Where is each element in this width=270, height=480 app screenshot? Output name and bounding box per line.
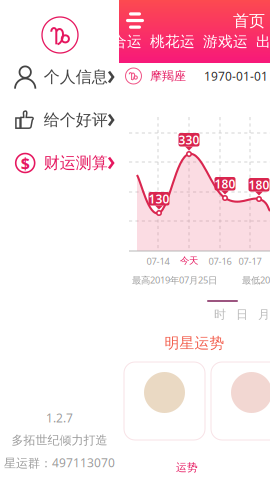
button[interactable]: $ — [0, 148, 118, 178]
staticText: 1.2.7 — [46, 410, 73, 426]
staticText: 多拓世纪倾力打造 — [11, 433, 107, 448]
staticText: 桃花运 — [150, 33, 195, 51]
button[interactable]: 首页 — [230, 9, 268, 33]
staticText: 130 — [148, 191, 169, 207]
staticText: 07-16 — [208, 255, 231, 267]
staticText: 运势 — [176, 461, 198, 474]
staticText: 1970-01-01 — [204, 68, 268, 84]
button[interactable]: 月 — [253, 308, 270, 321]
staticText: 180 — [214, 176, 235, 192]
staticText: 个人信息 — [44, 67, 108, 87]
staticText: 最高2019年07月25日 — [132, 274, 217, 286]
staticText: 07-17 — [238, 255, 261, 267]
button[interactable]: 日 — [231, 308, 253, 321]
staticText: 摩羯座 — [150, 69, 186, 83]
button[interactable] — [124, 362, 205, 440]
staticText: 合运 — [112, 33, 142, 51]
staticText: 330 — [178, 132, 199, 148]
button[interactable]: 个人信息 — [0, 62, 118, 92]
staticText: 游戏运 — [203, 33, 248, 51]
staticText: 日 — [236, 307, 248, 322]
button[interactable] — [211, 362, 270, 440]
button[interactable]: 时 — [209, 308, 231, 321]
staticText: 最低20 — [242, 274, 270, 286]
staticText: 财运测算 — [44, 153, 108, 173]
button[interactable]: 给个好评 — [0, 105, 118, 135]
staticText: 给个好评 — [44, 110, 108, 130]
staticText: $ — [21, 152, 30, 174]
button[interactable]: 运势 — [167, 462, 207, 473]
staticText: 07-14 — [146, 255, 169, 267]
staticText: 出行运 — [256, 33, 270, 51]
staticText: 首页 — [233, 11, 265, 31]
staticText: 今天 — [180, 255, 198, 266]
button[interactable]: Menu — [124, 9, 152, 32]
staticText: 180 — [248, 177, 269, 193]
staticText: 星运群：497113070 — [4, 455, 115, 471]
staticText: 月 — [258, 307, 270, 322]
staticText: 明星运势 — [164, 334, 224, 352]
staticText: 时 — [214, 307, 226, 322]
